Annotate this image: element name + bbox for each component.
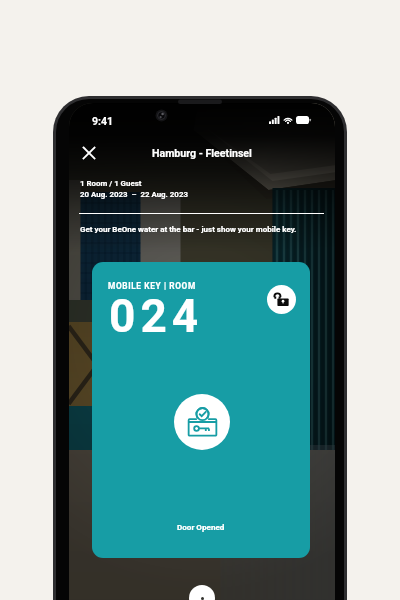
staticText: Door Opened	[177, 522, 225, 531]
staticText: Hamburg - Fleetinsel	[152, 147, 252, 159]
staticText: 024	[109, 289, 204, 343]
staticText: 9:41	[92, 115, 114, 127]
staticText: 20 Aug. 2023 – 22 Aug. 2023	[80, 190, 188, 199]
staticText: 1 Room / 1 Guest	[80, 179, 142, 188]
button[interactable]: Open door	[189, 585, 215, 600]
button[interactable]: Unlock door	[267, 285, 296, 314]
button[interactable]: Close	[78, 142, 100, 164]
button[interactable]: Mobile key	[174, 394, 230, 450]
staticText: Get your BeOne water at the bar - just s…	[80, 225, 297, 234]
button[interactable]: MOBILE KEY | ROOM	[92, 262, 310, 558]
staticText: MOBILE KEY | ROOM	[108, 281, 196, 291]
